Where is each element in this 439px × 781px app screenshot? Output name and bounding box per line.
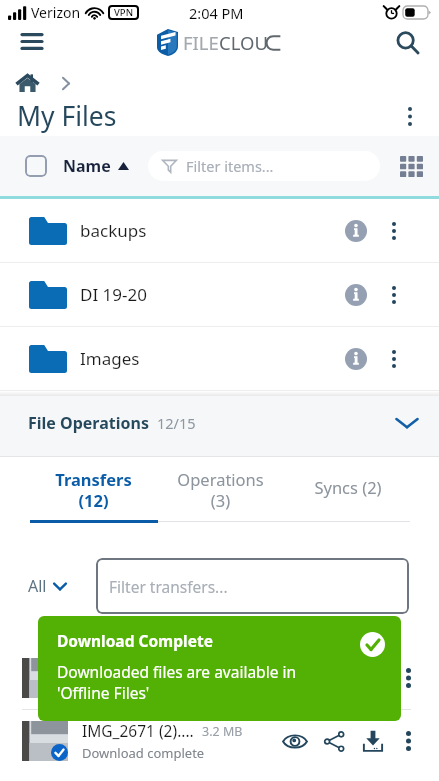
staticText: IMG_2671 (2).... xyxy=(82,657,194,678)
staticText: DI 19-20 xyxy=(80,283,147,306)
button[interactable]: More xyxy=(379,344,409,374)
staticText: Operations (3) xyxy=(177,468,264,512)
button[interactable]: Grid view xyxy=(396,151,426,181)
staticText: Verizon xyxy=(31,3,81,22)
button[interactable]: Name xyxy=(63,155,129,177)
staticText: IMG_2671 (2).... xyxy=(82,720,194,741)
button[interactable]: Select all xyxy=(25,155,47,177)
button[interactable]: All xyxy=(28,575,67,597)
button[interactable]: Operations (3) xyxy=(157,468,284,512)
button[interactable]: Search xyxy=(389,24,427,61)
staticText: Images xyxy=(80,347,140,370)
staticText: Download Complete xyxy=(57,630,213,651)
staticText: Download complete xyxy=(82,681,205,699)
button[interactable]: More xyxy=(379,216,409,246)
button[interactable]: Filter transfers... xyxy=(96,558,409,614)
button[interactable]: More options xyxy=(391,97,429,135)
staticText: Download complete xyxy=(82,744,205,762)
staticText: Filter items... xyxy=(186,156,274,176)
staticText: My Files xyxy=(17,98,117,134)
button[interactable]: File Operations xyxy=(0,396,439,456)
staticText: 12/15 xyxy=(157,413,196,433)
button[interactable]: More xyxy=(395,728,421,754)
staticText: FILE xyxy=(183,30,219,55)
button[interactable]: Info xyxy=(339,214,373,248)
staticText: 3.2 MB xyxy=(202,723,243,740)
staticText: Name xyxy=(63,155,111,177)
staticText: Syncs (2) xyxy=(314,476,382,498)
button[interactable]: Filter items... xyxy=(148,151,380,181)
staticText: VPN xyxy=(114,6,134,19)
button[interactable]: IMG_2671 (2).... xyxy=(0,647,439,709)
button[interactable]: Info xyxy=(339,278,373,312)
button[interactable]: More xyxy=(395,665,421,691)
button[interactable]: Preview xyxy=(281,727,309,755)
staticText: Filter transfers... xyxy=(109,576,228,597)
button[interactable]: Download Complete xyxy=(38,616,401,721)
staticText: backups xyxy=(80,219,147,242)
button[interactable]: IMG_2671 (2).... xyxy=(0,710,439,772)
staticText: Transfers (12) xyxy=(55,468,132,512)
button[interactable]: DI 19-20 xyxy=(0,263,439,327)
button[interactable]: Home xyxy=(14,70,40,96)
staticText: 2:04 PM xyxy=(189,3,244,23)
staticText: All xyxy=(28,575,47,597)
button[interactable]: Download xyxy=(359,727,387,755)
staticText: File Operations xyxy=(28,412,149,434)
staticText: Downloaded files are available in 'Offli… xyxy=(57,661,296,704)
staticText: CLOU xyxy=(219,30,268,55)
staticText: 3.2 MB xyxy=(202,660,243,677)
button[interactable]: Info xyxy=(339,342,373,376)
button[interactable]: Transfers (12) xyxy=(30,468,157,512)
button[interactable]: Images xyxy=(0,327,439,391)
button[interactable]: Syncs (2) xyxy=(284,468,411,498)
button[interactable]: More xyxy=(379,280,409,310)
button[interactable]: Preview xyxy=(281,664,309,692)
button[interactable]: Menu xyxy=(12,23,52,60)
button[interactable]: Share xyxy=(320,727,348,755)
button[interactable]: backups xyxy=(0,199,439,263)
